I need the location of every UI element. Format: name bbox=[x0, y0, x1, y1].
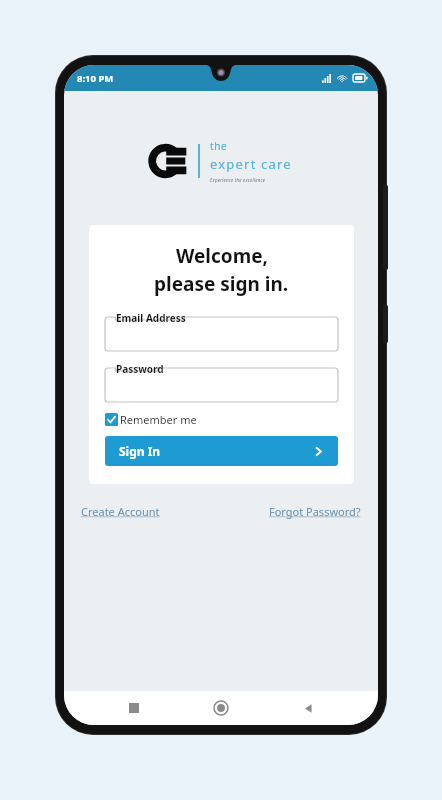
button[interactable]: Home bbox=[204, 691, 238, 725]
button[interactable]: Back bbox=[291, 691, 325, 725]
button[interactable]: Forgot Password? bbox=[269, 504, 361, 519]
button[interactable]: Email Address bbox=[105, 317, 338, 351]
button[interactable]: Sign In bbox=[105, 436, 338, 466]
staticText: Forgot Password? bbox=[269, 504, 361, 519]
staticText: 8:10 PM bbox=[77, 72, 114, 85]
button[interactable]: Remember me bbox=[105, 412, 338, 427]
staticText: please sign in. bbox=[154, 271, 289, 297]
staticText: Create Account bbox=[81, 504, 160, 519]
staticText: Experience the excellence bbox=[210, 177, 266, 183]
staticText: the bbox=[210, 139, 228, 153]
button[interactable]: Recent apps bbox=[117, 691, 151, 725]
staticText: Welcome, bbox=[176, 243, 268, 269]
staticText: Sign In bbox=[119, 443, 161, 459]
staticText: expert care bbox=[210, 155, 292, 173]
button[interactable]: Password bbox=[105, 368, 338, 402]
staticText: Password bbox=[116, 362, 164, 376]
staticText: Email Address bbox=[116, 311, 186, 325]
button[interactable]: Create Account bbox=[81, 504, 160, 519]
staticText: Remember me bbox=[120, 412, 197, 427]
